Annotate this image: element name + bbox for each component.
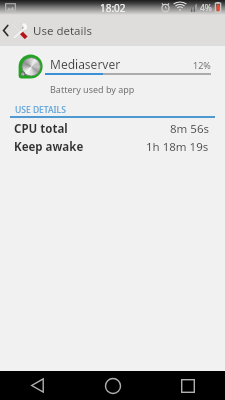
staticText: Mediaserver — [50, 56, 121, 72]
staticText: 12% — [193, 59, 211, 71]
staticText: CPU total — [14, 121, 68, 137]
staticText: 1h 18m 19s — [146, 139, 209, 155]
button[interactable]: CPU total — [0, 120, 225, 137]
staticText: Use details — [33, 23, 92, 39]
button[interactable]: Navigate up — [0, 15, 29, 46]
staticText: 18:02 — [100, 1, 126, 15]
staticText: 4% — [200, 2, 212, 14]
button[interactable]: Recent apps — [150, 371, 225, 400]
button[interactable]: Keep awake — [0, 138, 225, 155]
staticText: Battery used by app — [50, 83, 135, 95]
button[interactable]: Home — [75, 371, 150, 400]
staticText: 8m 56s — [170, 121, 209, 137]
button[interactable]: Back — [0, 371, 75, 400]
staticText: USE DETAILS — [15, 104, 66, 116]
staticText: Keep awake — [14, 139, 84, 155]
